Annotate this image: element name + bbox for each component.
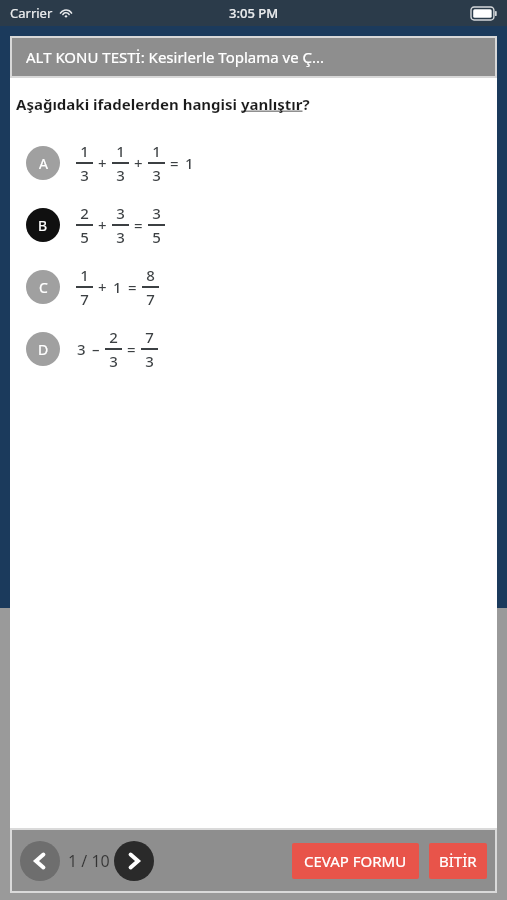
staticText: 3 [116,165,125,185]
staticText: = [134,215,143,235]
staticText: 3 [116,203,125,223]
staticText: 1 / 10 [68,850,110,872]
button[interactable]: C [10,256,497,318]
staticText: 3 [116,227,125,247]
staticText: 1 [185,153,194,173]
staticText: 1 [152,141,161,161]
staticText: + [98,277,107,297]
staticText: 3 [152,203,161,223]
staticText: 5 [80,227,89,247]
staticText: D [38,340,49,359]
staticText: 3 [145,351,154,371]
staticText: 1 [116,141,125,161]
staticText: ALT KONU TESTİ: Kesirlerle Toplama ve Ç.… [26,47,325,67]
staticText: 2 [109,327,118,347]
staticText: 8 [146,265,155,285]
staticText: BİTİR [439,851,477,871]
staticText: 1 [80,265,89,285]
staticText: 3 [80,165,89,185]
staticText: 1 [113,277,122,297]
staticText: 7 [80,289,89,309]
staticText: 5 [152,227,161,247]
button[interactable]: A [10,132,497,194]
button[interactable]: D [10,318,497,380]
staticText: 3 [77,339,86,359]
staticText: C [39,278,48,297]
staticText: 7 [146,289,155,309]
button[interactable]: Previous question [20,841,60,881]
staticText: A [39,154,48,173]
staticText: 2 [80,203,89,223]
staticText: + [134,153,143,173]
button[interactable]: CEVAP FORMU [292,843,419,879]
staticText: + [98,215,107,235]
staticText: CEVAP FORMU [304,851,407,871]
staticText: B [38,216,48,235]
staticText: 7 [145,327,154,347]
button[interactable]: BİTİR [429,843,487,879]
staticText: – [92,339,100,359]
staticText: 3 [152,165,161,185]
button[interactable]: Next question [114,841,154,881]
button[interactable]: ALT KONU TESTİ: Kesirlerle Toplama ve Ç.… [12,38,495,76]
staticText: Aşağıdaki ifadelerden hangisi yanlıştır? [16,94,310,114]
staticText: = [170,153,179,173]
staticText: = [128,277,137,297]
staticText: 3:05 PM [229,4,279,22]
staticText: 3 [109,351,118,371]
staticText: + [98,153,107,173]
staticText: = [127,339,136,359]
button[interactable]: B [10,194,497,256]
staticText: Carrier [10,4,53,22]
staticText: 1 [80,141,89,161]
